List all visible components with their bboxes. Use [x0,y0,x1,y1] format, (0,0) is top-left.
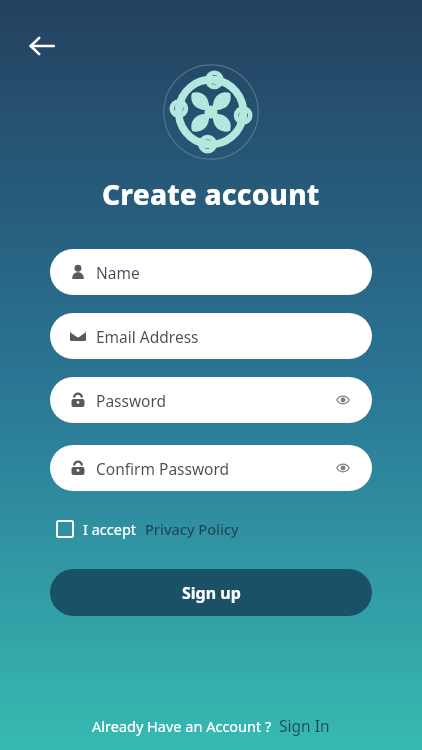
staticText: Confirm Password [96,458,230,479]
button[interactable]: Name [50,249,372,295]
staticText: Already Have an Account ? [92,716,272,736]
staticText: Name [96,262,140,283]
button[interactable]: I accept [56,515,239,543]
staticText: I accept [83,519,137,539]
button[interactable]: Back [18,22,66,70]
button[interactable]: Confirm Password [50,445,372,491]
staticText: Sign In [279,715,330,736]
button[interactable]: Show password [332,457,354,479]
staticText: Sign up [182,582,241,604]
button[interactable]: Sign up [50,569,372,616]
staticText: Password [96,390,167,411]
button[interactable]: Email Address [50,313,372,359]
button[interactable]: Sign In [279,715,330,736]
button[interactable]: Privacy Policy [145,519,239,539]
staticText: Create account [102,175,320,213]
button[interactable]: Password [50,377,372,423]
button[interactable]: Show password [332,389,354,411]
staticText: Privacy Policy [145,519,239,539]
staticText: Email Address [96,326,199,347]
